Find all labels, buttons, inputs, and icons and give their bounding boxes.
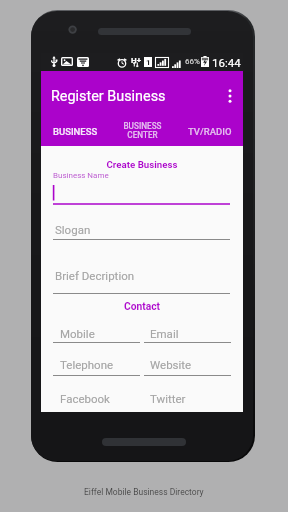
- staticText: H+: [131, 56, 142, 65]
- staticText: BUSINESS CENTER: [123, 121, 162, 140]
- staticText: 66%: [185, 57, 200, 66]
- staticText: BUSINESS: [53, 126, 98, 137]
- button[interactable]: TV/RADIO: [176, 118, 243, 146]
- staticText: Mobile: [60, 327, 95, 340]
- staticText: Register Business: [51, 88, 166, 105]
- staticText: 16:44: [212, 56, 241, 69]
- button[interactable]: BUSINESS: [41, 118, 109, 146]
- staticText: 1: [146, 58, 151, 67]
- staticText: Slogan: [55, 223, 91, 236]
- staticText: Twitter: [150, 392, 186, 405]
- staticText: Eiffel Mobile Business Directory: [84, 487, 204, 497]
- staticText: Email: [150, 327, 179, 340]
- staticText: Create Business: [41, 159, 243, 170]
- staticText: Telephone: [60, 358, 114, 371]
- button[interactable]: More options: [219, 85, 241, 107]
- staticText: Brief Decription: [55, 269, 135, 282]
- staticText: Facebook: [60, 392, 110, 405]
- staticText: TV/RADIO: [188, 126, 232, 137]
- staticText: Website: [150, 358, 192, 371]
- staticText: Contact: [41, 300, 243, 312]
- button[interactable]: BUSINESS CENTER: [109, 118, 176, 146]
- staticText: Business Name: [53, 171, 109, 180]
